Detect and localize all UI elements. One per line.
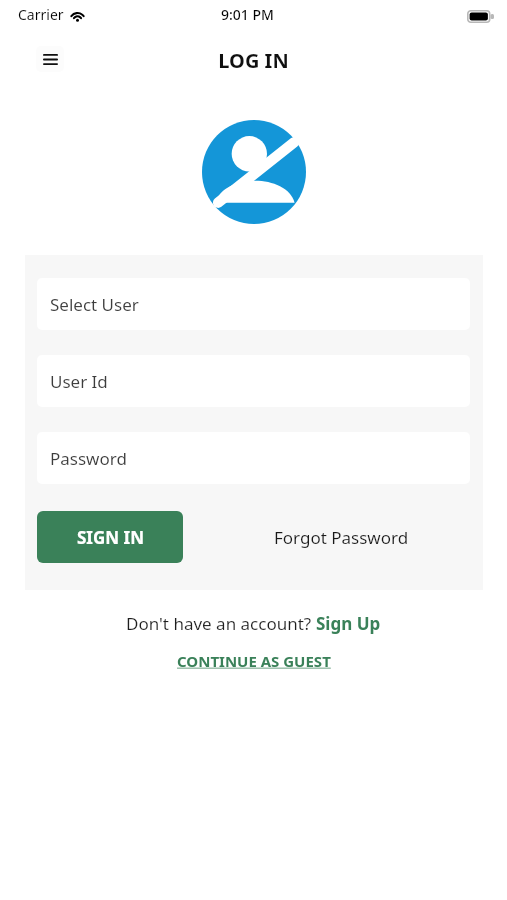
staticText: 9:01 PM [221, 5, 274, 24]
staticText: Select User [50, 293, 139, 316]
button[interactable]: Forgot Password [183, 511, 475, 563]
staticText: Password [50, 447, 127, 470]
staticText: LOG IN [0, 47, 507, 74]
button[interactable]: User Id [37, 355, 470, 407]
staticText: CONTINUE AS GUEST [177, 651, 331, 671]
button[interactable]: Menu [36, 46, 64, 72]
staticText: Sign Up [316, 612, 381, 635]
staticText: SIGN IN [77, 526, 144, 549]
staticText: Forgot Password [274, 526, 409, 549]
staticText: Don't have an account? [126, 612, 316, 635]
staticText: Carrier [18, 5, 64, 24]
button[interactable]: Password [37, 432, 470, 484]
button[interactable]: Don't have an account? [126, 612, 381, 635]
button[interactable]: SIGN IN [37, 511, 183, 563]
button[interactable]: CONTINUE AS GUEST [177, 651, 331, 671]
button[interactable]: Select User [37, 278, 470, 330]
staticText: User Id [50, 370, 108, 393]
